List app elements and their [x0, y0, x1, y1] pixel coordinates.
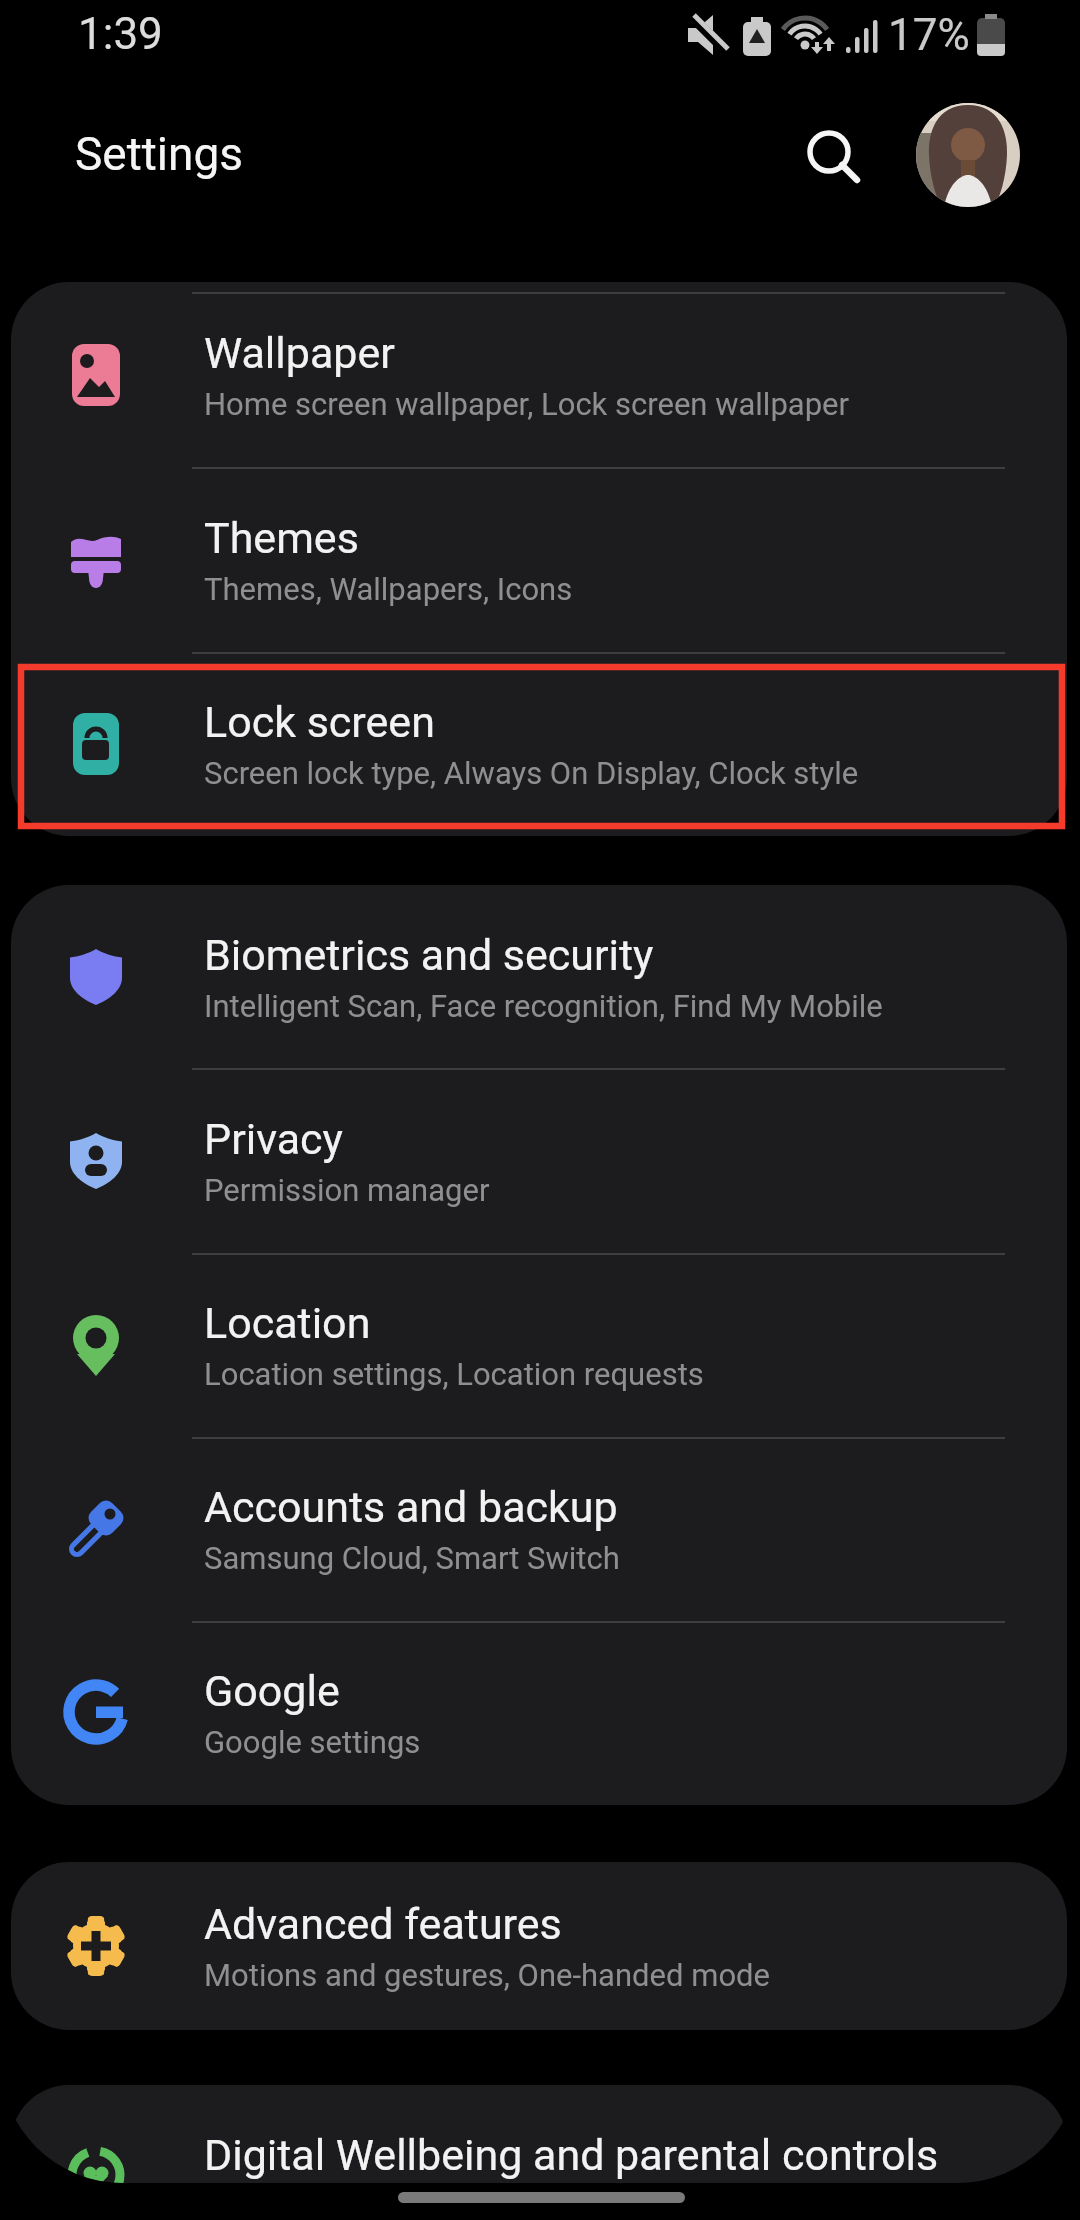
- staticText: Screen time, app timers, Focus mode: [204, 2188, 713, 2220]
- staticText: Google: [204, 1666, 340, 1716]
- button[interactable]: Digital Wellbeing and parental controls: [11, 2085, 1067, 2220]
- button[interactable]: Themes: [11, 467, 1067, 652]
- button[interactable]: Accounts and backup: [11, 1437, 1067, 1621]
- button[interactable]: Advanced features: [11, 1862, 1067, 2030]
- staticText: Settings: [75, 127, 243, 181]
- staticText: 17%: [888, 9, 970, 61]
- staticText: Samsung Cloud, Smart Switch: [204, 1540, 620, 1576]
- staticText: 1:39: [78, 8, 163, 60]
- staticText: Motions and gestures, One-handed mode: [204, 1957, 770, 1993]
- staticText: Lock screen: [204, 697, 435, 747]
- button[interactable]: Privacy: [11, 1069, 1067, 1253]
- staticText: Home screen wallpaper, Lock screen wallp…: [204, 386, 850, 422]
- button[interactable]: [795, 118, 867, 190]
- staticText: Google settings: [204, 1724, 421, 1760]
- staticText: Screen lock type, Always On Display, Clo…: [204, 755, 859, 791]
- button[interactable]: Google: [11, 1621, 1067, 1805]
- staticText: Location: [204, 1298, 371, 1348]
- staticText: Permission manager: [204, 1172, 490, 1208]
- button[interactable]: [916, 103, 1020, 207]
- staticText: Wallpaper: [204, 328, 395, 378]
- button[interactable]: Biometrics and security: [11, 885, 1067, 1069]
- staticText: Digital Wellbeing and parental controls: [204, 2130, 939, 2180]
- staticText: Advanced features: [204, 1899, 562, 1949]
- button[interactable]: Wallpaper: [11, 282, 1067, 467]
- staticText: Intelligent Scan, Face recognition, Find…: [204, 988, 883, 1024]
- staticText: Location settings, Location requests: [204, 1356, 704, 1392]
- button[interactable]: Location: [11, 1253, 1067, 1437]
- staticText: Biometrics and security: [204, 930, 654, 980]
- staticText: Themes, Wallpapers, Icons: [204, 571, 573, 607]
- staticText: Privacy: [204, 1114, 343, 1164]
- button[interactable]: Lock screen: [11, 652, 1067, 836]
- staticText: Accounts and backup: [204, 1482, 618, 1532]
- staticText: Themes: [204, 513, 359, 563]
